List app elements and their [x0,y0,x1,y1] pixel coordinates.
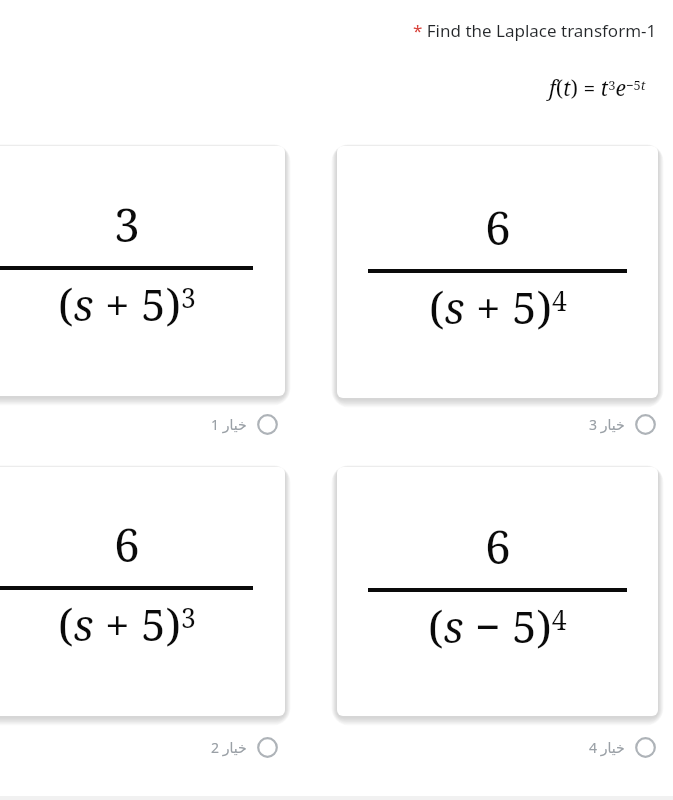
staticText: خيار 4 [589,738,625,757]
staticText: 3 [114,193,140,256]
staticText: * Find the Laplace transform-1 [413,19,657,42]
button[interactable]: 3 [0,146,285,396]
button[interactable]: 6 [337,467,658,716]
staticText: f(t) = t3e−5t [549,74,646,103]
button[interactable]: خيار 3 [563,410,660,439]
button[interactable]: خيار 2 [185,733,282,762]
staticText: (s + 5)4 [429,277,567,337]
staticText: 6 [114,513,140,576]
staticText: 6 [485,196,511,259]
button[interactable]: خيار 1 [185,410,282,439]
staticText: 6 [485,515,511,578]
staticText: (s − 5)4 [428,596,567,656]
button[interactable]: 6 [337,146,658,398]
staticText: خيار 1 [211,415,247,434]
staticText: خيار 2 [211,738,247,757]
staticText: (s + 5)3 [58,274,196,334]
staticText: (s + 5)3 [58,594,196,654]
button[interactable]: 6 [0,467,285,716]
button[interactable]: خيار 4 [563,733,660,762]
staticText: خيار 3 [589,415,625,434]
